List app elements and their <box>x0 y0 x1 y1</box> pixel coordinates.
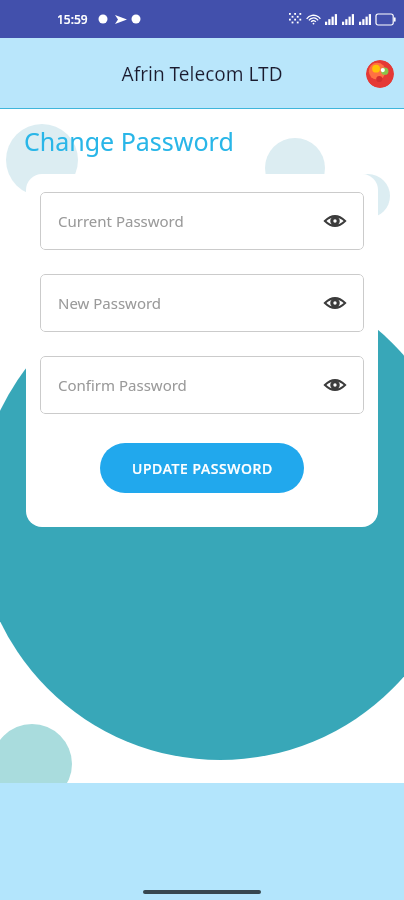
staticText: Change Password <box>24 124 234 158</box>
button[interactable]: Toggle password visibility <box>322 372 348 398</box>
button[interactable]: Toggle password visibility <box>322 208 348 234</box>
button[interactable]: UPDATE PASSWORD <box>100 443 304 493</box>
staticText: 15:59 <box>57 11 88 27</box>
staticText: Current Password <box>58 211 322 231</box>
staticText: UPDATE PASSWORD <box>132 459 273 478</box>
button[interactable]: Profile <box>366 60 394 88</box>
staticText: Afrin Telecom LTD <box>121 61 283 87</box>
button[interactable]: New Password <box>40 274 364 332</box>
staticText: Confirm Password <box>58 375 322 395</box>
staticText: New Password <box>58 293 322 313</box>
button[interactable]: Current Password <box>40 192 364 250</box>
button[interactable]: Toggle password visibility <box>322 290 348 316</box>
button[interactable]: Confirm Password <box>40 356 364 414</box>
